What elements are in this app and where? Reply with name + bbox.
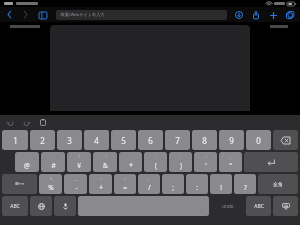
button[interactable]: 3 [57, 130, 82, 150]
staticText: % [48, 183, 54, 192]
staticText: @ [24, 161, 30, 170]
staticText: - [75, 183, 78, 192]
button[interactable]: 4 [84, 130, 109, 150]
staticText: … [229, 155, 232, 160]
button[interactable]: 検索/Webサイト名入力 [56, 10, 227, 20]
staticText: " [229, 161, 232, 170]
button[interactable]: Space [78, 196, 209, 216]
staticText: # [51, 161, 56, 170]
button[interactable]: Symbols [2, 174, 37, 194]
button[interactable]: Sidebar [38, 10, 48, 20]
staticText: / [148, 183, 151, 192]
button[interactable]: 、 [41, 152, 65, 172]
staticText: ¥ [77, 161, 81, 170]
button[interactable]: Dictation [54, 196, 76, 216]
staticText: 3 [67, 135, 72, 146]
button[interactable]: ABC [2, 196, 28, 216]
staticText: ? [244, 183, 247, 192]
staticText: = [123, 183, 127, 192]
button[interactable]: 6 [138, 130, 163, 150]
button[interactable]: 8 [192, 130, 217, 150]
button[interactable]: ― [64, 174, 87, 194]
staticText: 」 [179, 155, 183, 160]
staticText: ― [74, 177, 78, 182]
button[interactable]: Change keyboard [30, 196, 52, 216]
button[interactable]: 全角 [258, 174, 298, 194]
button[interactable]: ’ [234, 174, 256, 194]
button[interactable]: ： [186, 174, 208, 194]
staticText: ； [171, 177, 175, 182]
staticText: 検索/Webサイト名入力 [60, 12, 105, 18]
staticText: ! [220, 183, 222, 192]
button[interactable]: ％ [39, 174, 62, 194]
button[interactable]: … [219, 152, 242, 172]
staticText: 2 [40, 135, 45, 146]
staticText: 8 [202, 135, 207, 146]
button[interactable]: Share [251, 10, 261, 20]
button[interactable]: ・ [119, 152, 142, 172]
button[interactable]: Undo [211, 196, 244, 216]
button[interactable]: ＋ [89, 174, 112, 194]
button[interactable]: Paste [38, 118, 47, 127]
staticText: 6 [148, 135, 153, 146]
staticText: 「 [154, 155, 158, 160]
staticText: ‘ [221, 177, 222, 182]
button[interactable]: New tab [268, 10, 278, 20]
button[interactable]: 5 [111, 130, 136, 150]
staticText: ？ [77, 155, 81, 160]
staticText: ☰÷× [15, 181, 24, 187]
staticText: ～ [204, 155, 208, 160]
staticText: 全角 [273, 181, 283, 187]
button[interactable]: 」 [169, 152, 192, 172]
staticText: + [99, 183, 103, 192]
button[interactable]: Delete [273, 130, 298, 150]
staticText: 5 [121, 135, 126, 146]
staticText: ！ [104, 155, 108, 160]
staticText: 9 [229, 135, 234, 146]
button[interactable]: Show tabs [285, 10, 295, 20]
button[interactable]: 「 [144, 152, 167, 172]
button[interactable]: Redo [22, 118, 31, 127]
button[interactable]: ～ [194, 152, 217, 172]
button[interactable]: Undo [6, 118, 15, 127]
button[interactable]: ！ [93, 152, 117, 172]
button[interactable]: ABC [246, 196, 271, 216]
staticText: * [129, 161, 133, 170]
staticText: ) [180, 161, 182, 170]
button[interactable]: ？ [67, 152, 91, 172]
button[interactable]: 2 [30, 130, 55, 150]
staticText: 4 [94, 135, 99, 146]
button[interactable]: 。 [15, 152, 39, 172]
staticText: ’ [245, 177, 246, 182]
staticText: ' [205, 161, 207, 170]
button[interactable]: 9 [219, 130, 244, 150]
staticText: ％ [49, 177, 53, 182]
staticText: ・ [129, 155, 133, 160]
staticText: & [103, 161, 108, 170]
button[interactable]: 0 [246, 130, 271, 150]
staticText: : [196, 183, 198, 192]
staticText: 7 [175, 135, 180, 146]
button[interactable]: Hide keyboard [273, 196, 298, 216]
button[interactable]: ／ [138, 174, 160, 194]
button[interactable]: Forward [21, 10, 30, 19]
staticText: ／ [147, 177, 151, 182]
staticText: ABC [10, 203, 20, 210]
staticText: ; [172, 183, 174, 192]
button[interactable]: Back [5, 10, 14, 19]
button[interactable]: ； [162, 174, 184, 194]
button[interactable]: Downloads [234, 10, 244, 20]
button[interactable]: ‘ [210, 174, 232, 194]
button[interactable]: Return [244, 152, 298, 172]
staticText: 0 [256, 135, 261, 146]
staticText: 1 [13, 135, 18, 146]
staticText: ( [155, 161, 157, 170]
button[interactable]: 1 [2, 130, 28, 150]
button[interactable]: ＝ [114, 174, 136, 194]
button[interactable]: 7 [165, 130, 190, 150]
staticText: undo [222, 203, 234, 209]
staticText: ＝ [123, 177, 127, 182]
